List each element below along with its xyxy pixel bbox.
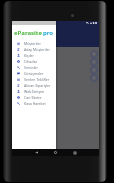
staticText: Cari Ekstre xyxy=(24,95,42,100)
staticText: Görüşmeler xyxy=(24,71,44,76)
button[interactable]: Action 3 xyxy=(90,66,98,74)
staticText: Servisler xyxy=(24,65,39,70)
button[interactable]: Verilen Teklifler xyxy=(12,76,56,82)
staticText: eParasite xyxy=(14,29,43,37)
staticText: Alınan Siparişler xyxy=(24,83,51,88)
button[interactable]: Cari Ekstre xyxy=(12,94,56,100)
button[interactable]: Kasa Hareket xyxy=(12,100,56,106)
staticText: Kasa Hareket xyxy=(24,101,46,106)
button[interactable]: Recents xyxy=(71,149,78,156)
button[interactable]: Servisler xyxy=(12,64,56,70)
button[interactable]: Home xyxy=(52,149,59,156)
staticText: Verilen Teklifler xyxy=(24,77,50,82)
button[interactable]: Görüşmeler xyxy=(12,70,56,76)
staticText: Müşteriler xyxy=(24,41,41,46)
staticText: pro xyxy=(43,29,54,37)
button[interactable]: Alınan Siparişler xyxy=(12,82,56,88)
button[interactable]: Kişiler xyxy=(12,52,56,58)
button[interactable]: Action 1 xyxy=(90,50,98,58)
staticText: Cihazlar xyxy=(24,59,38,64)
button[interactable]: Cihazlar xyxy=(12,58,56,64)
button[interactable]: Action 2 xyxy=(90,58,98,66)
button[interactable]: Web İletişim xyxy=(12,88,56,94)
button[interactable]: Back xyxy=(33,149,40,156)
staticText: Web İletişim xyxy=(24,89,45,94)
button[interactable]: Action 4 xyxy=(90,74,98,82)
staticText: Aday Müşteriler xyxy=(24,47,50,52)
staticText: Kişiler xyxy=(24,53,34,58)
button[interactable]: Aday Müşteriler xyxy=(12,46,56,52)
button[interactable]: Müşteriler xyxy=(12,40,56,46)
